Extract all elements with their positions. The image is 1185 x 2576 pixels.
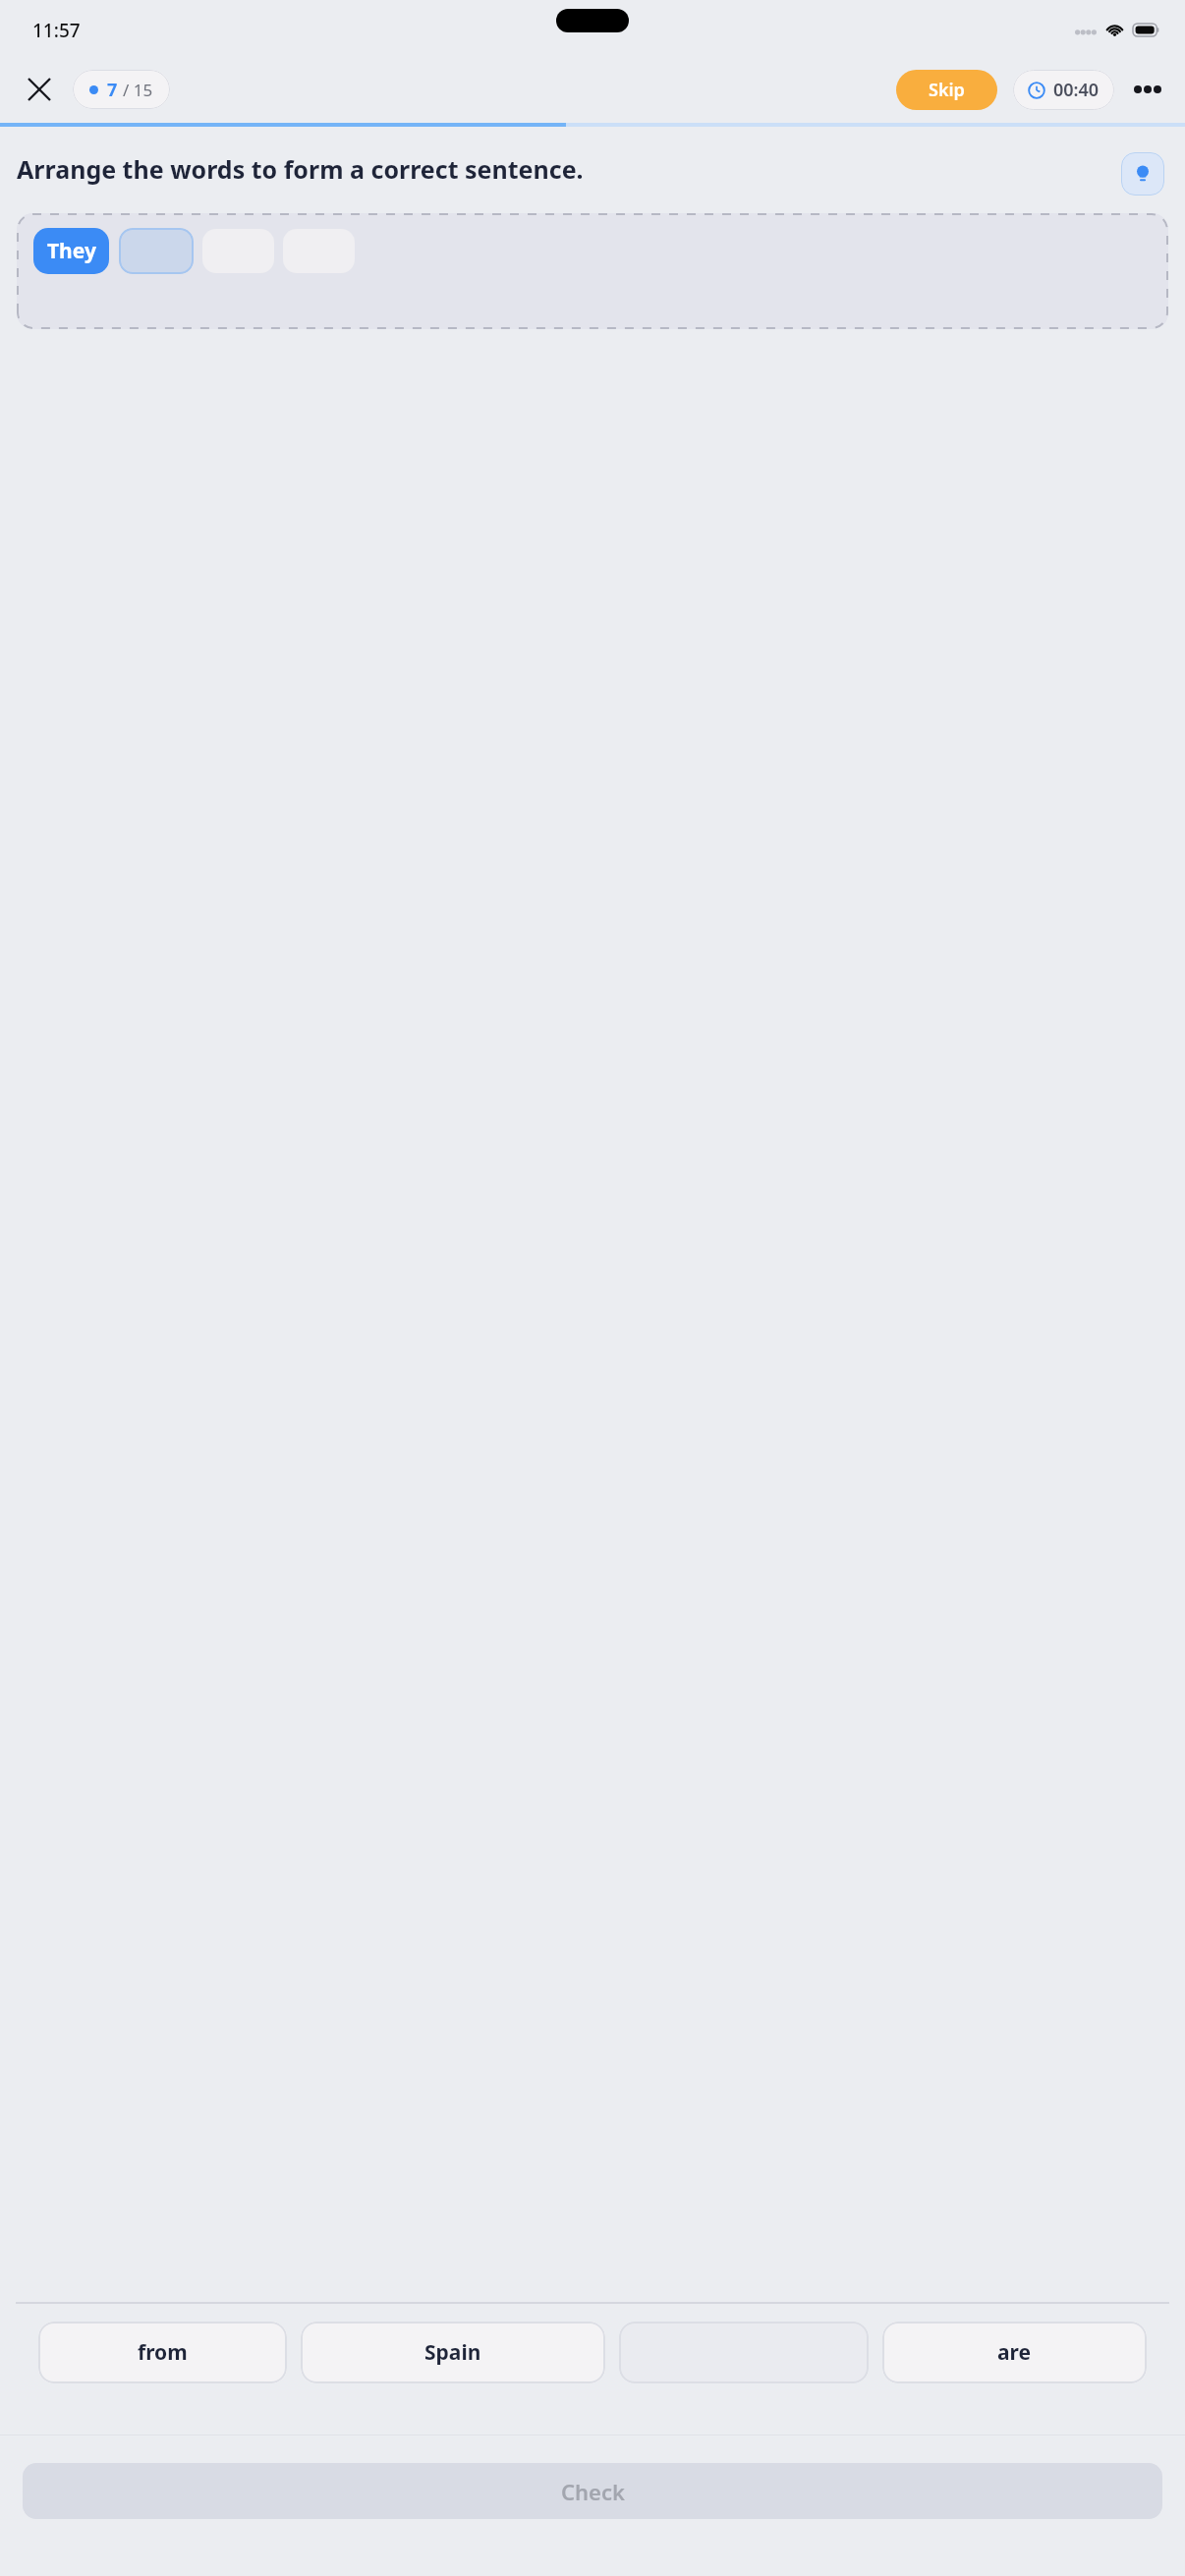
- staticText: 11:57: [32, 18, 81, 43]
- button[interactable]: are: [882, 2322, 1147, 2383]
- button[interactable]: Used word: [619, 2322, 869, 2383]
- button[interactable]: More options: [1128, 70, 1167, 109]
- staticText: Check: [561, 2477, 625, 2506]
- staticText: They: [47, 237, 96, 265]
- staticText: from: [138, 2338, 188, 2367]
- button[interactable]: Next word slot: [119, 228, 194, 274]
- button[interactable]: Close: [18, 68, 61, 111]
- button[interactable]: Skip: [896, 70, 997, 110]
- staticText: 00:40: [1053, 78, 1100, 102]
- button[interactable]: Spain: [301, 2322, 605, 2383]
- button[interactable]: 00:40: [1013, 70, 1114, 110]
- button[interactable]: from: [38, 2322, 287, 2383]
- button[interactable]: Check: [23, 2463, 1162, 2519]
- staticText: Skip: [929, 78, 965, 102]
- staticText: Spain: [424, 2338, 481, 2367]
- button[interactable]: They: [33, 228, 109, 274]
- staticText: Arrange the words to form a correct sent…: [17, 152, 1101, 186]
- staticText: are: [997, 2338, 1032, 2367]
- button[interactable]: 7: [73, 70, 170, 109]
- staticText: 7: [107, 78, 118, 102]
- staticText: / 15: [123, 79, 153, 101]
- button[interactable]: Hint: [1121, 152, 1164, 196]
